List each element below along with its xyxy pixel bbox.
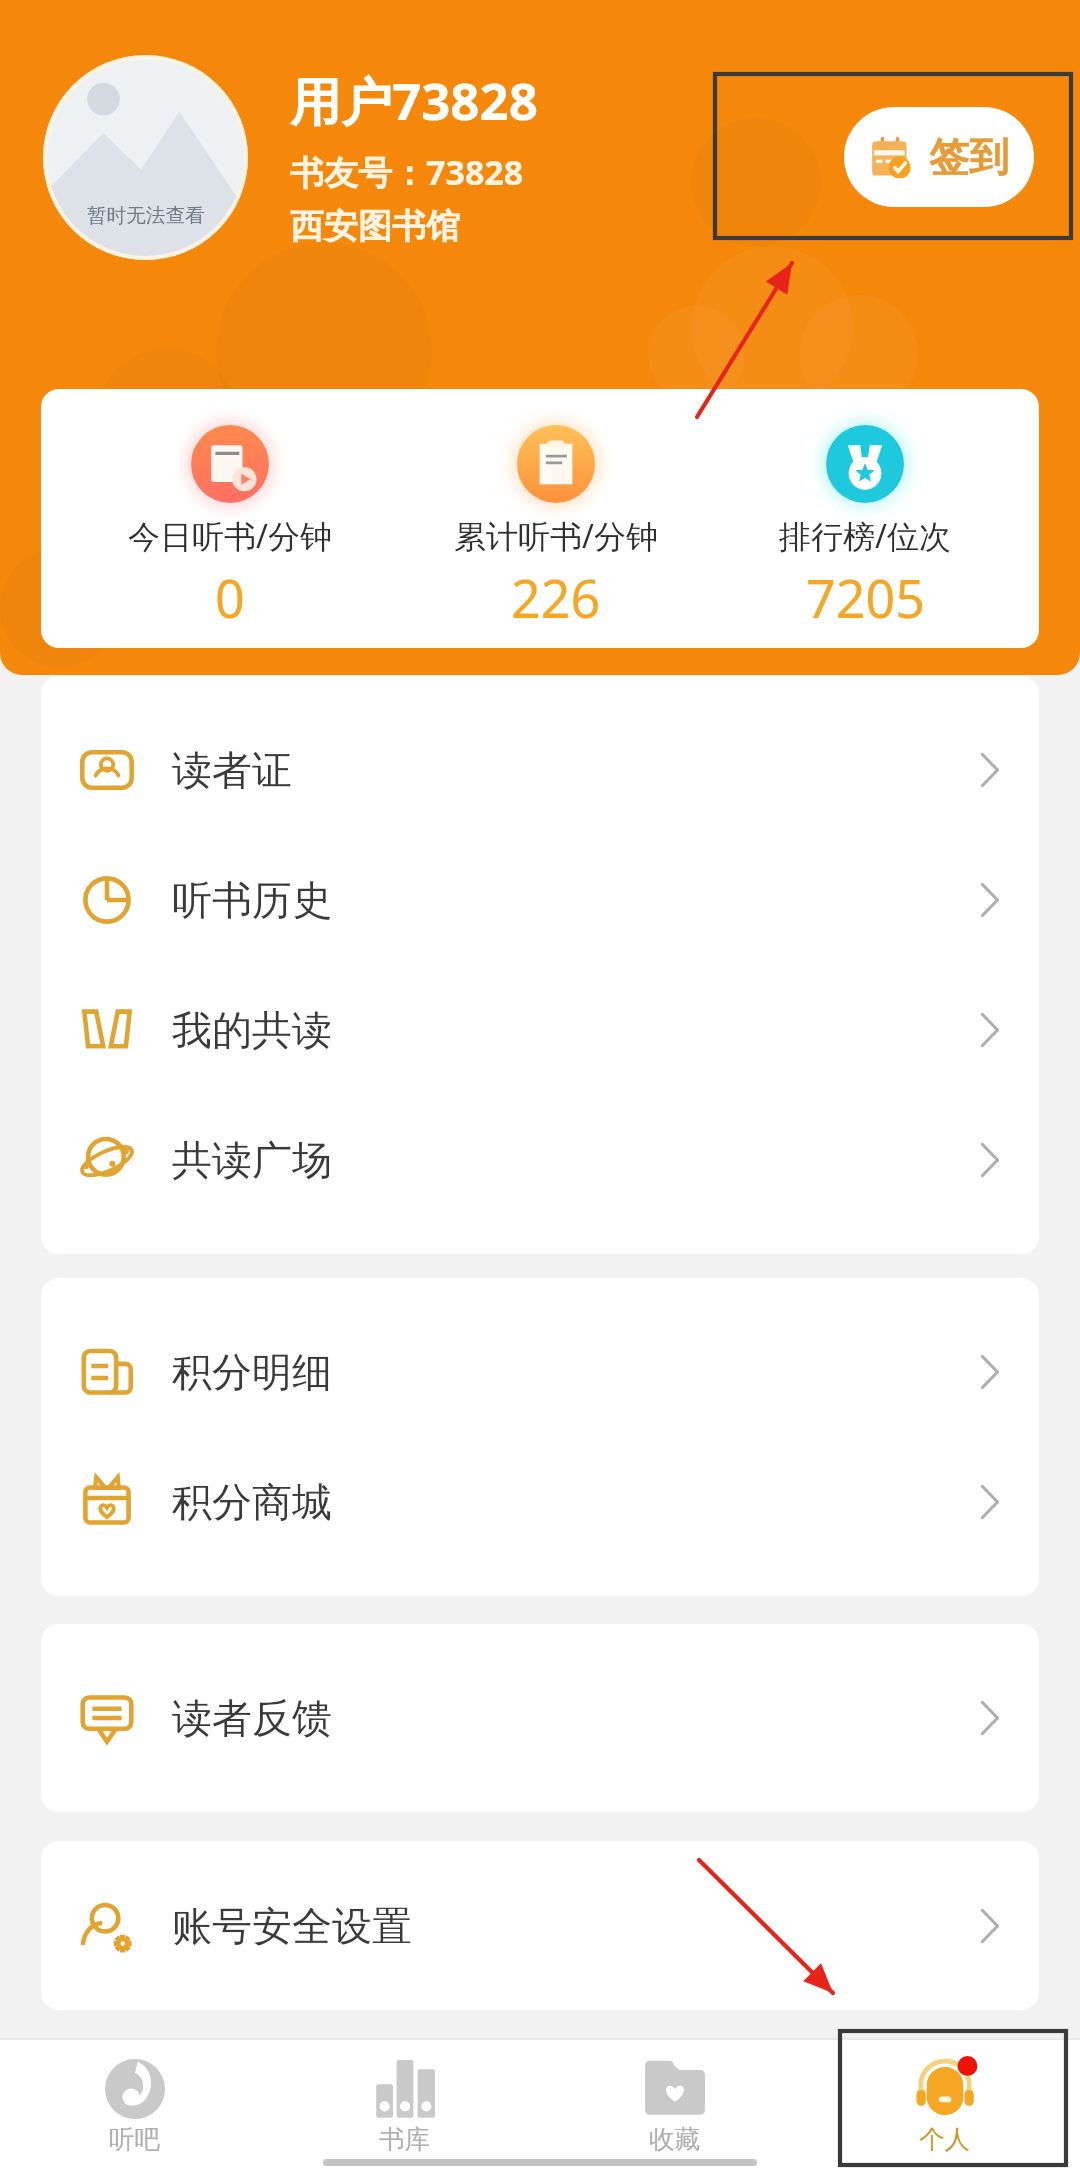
button[interactable]: 暂时无法查看: [43, 55, 248, 260]
staticText: 我的共读: [172, 1005, 332, 1055]
button[interactable]: 个人: [810, 2040, 1080, 2172]
button[interactable]: 累计听书/分钟: [436, 389, 676, 648]
staticText: 个人: [919, 2123, 971, 2155]
staticText: 收藏: [649, 2123, 701, 2155]
staticText: 今日听书/分钟: [128, 514, 332, 558]
staticText: 排行榜/位次: [779, 514, 951, 558]
staticText: 暂时无法查看: [87, 203, 205, 228]
button[interactable]: 我的共读: [41, 965, 1039, 1095]
staticText: 积分明细: [172, 1347, 332, 1397]
staticText: 签到: [929, 132, 1009, 182]
button[interactable]: 书库: [270, 2040, 540, 2172]
staticText: 用户73828: [290, 65, 538, 135]
staticText: 7205: [806, 562, 925, 633]
staticText: 226: [511, 562, 601, 633]
staticText: 共读广场: [172, 1135, 332, 1185]
button[interactable]: 积分明细: [41, 1307, 1039, 1437]
staticText: 听吧: [109, 2123, 161, 2155]
staticText: 读者反馈: [172, 1693, 332, 1743]
staticText: 听书历史: [172, 875, 332, 925]
staticText: 读者证: [172, 745, 292, 795]
button[interactable]: 账号安全设置: [41, 1870, 1039, 1981]
button[interactable]: 排行榜/位次: [745, 389, 985, 648]
button[interactable]: 读者证: [41, 705, 1039, 835]
staticText: 累计听书/分钟: [454, 514, 658, 558]
staticText: 西安图书馆: [290, 205, 460, 248]
button[interactable]: 今日听书/分钟: [110, 389, 350, 648]
staticText: 积分商城: [172, 1477, 332, 1527]
staticText: 书库: [379, 2123, 431, 2155]
staticText: 账号安全设置: [172, 1901, 412, 1951]
staticText: 书友号：73828: [290, 149, 524, 195]
button[interactable]: 听吧: [0, 2040, 270, 2172]
button[interactable]: 收藏: [540, 2040, 810, 2172]
button[interactable]: 共读广场: [41, 1095, 1039, 1225]
button[interactable]: 听书历史: [41, 835, 1039, 965]
button[interactable]: 积分商城: [41, 1437, 1039, 1567]
staticText: 0: [215, 562, 245, 633]
button[interactable]: 读者反馈: [41, 1653, 1039, 1783]
button[interactable]: 签到: [844, 107, 1034, 207]
